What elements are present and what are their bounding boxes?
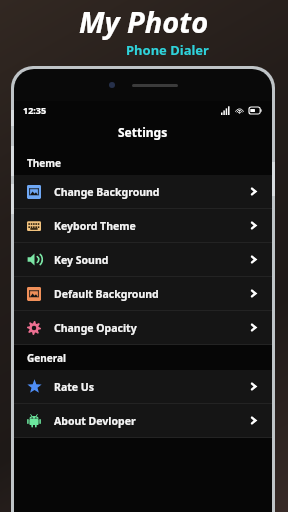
staticText: Phone Dialer xyxy=(126,41,209,59)
button[interactable]: Key Sound xyxy=(14,243,272,276)
button[interactable]: Default Background xyxy=(14,277,272,310)
staticText: Keybord Theme xyxy=(54,219,136,233)
button[interactable]: Keybord Theme xyxy=(14,209,272,242)
staticText: My Photo xyxy=(79,2,209,41)
button[interactable]: Rate Us xyxy=(14,370,272,403)
button[interactable]: Change Opacity xyxy=(14,311,272,344)
staticText: Default Background xyxy=(54,287,159,301)
staticText: General xyxy=(27,351,66,365)
staticText: Theme xyxy=(27,156,61,170)
staticText: Rate Us xyxy=(54,380,94,394)
button[interactable]: Change Background xyxy=(14,175,272,208)
staticText: About Devloper xyxy=(54,414,136,428)
staticText: Settings xyxy=(118,124,168,140)
staticText: Change Opacity xyxy=(54,321,137,335)
staticText: 12:35 xyxy=(23,104,47,116)
staticText: Key Sound xyxy=(54,253,109,267)
button[interactable]: About Devloper xyxy=(14,404,272,437)
staticText: Change Background xyxy=(54,185,160,199)
